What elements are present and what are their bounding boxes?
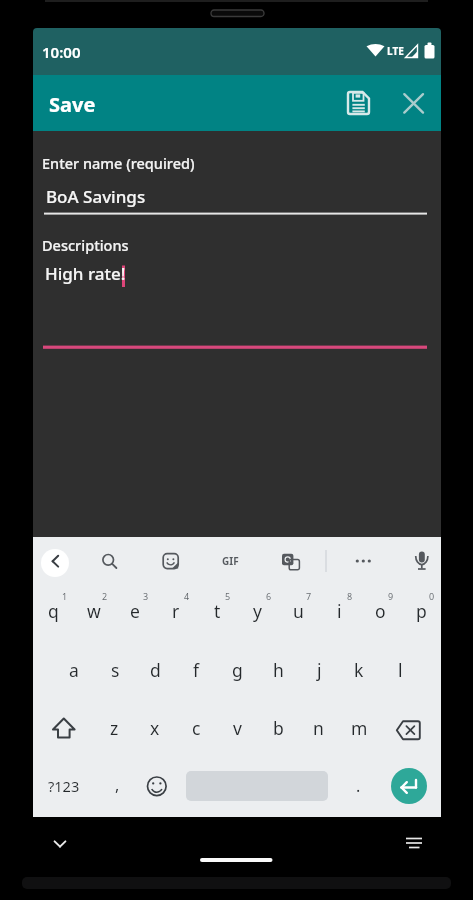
button[interactable] — [400, 710, 440, 750]
button[interactable]: x — [135, 706, 175, 750]
staticText: i — [337, 599, 342, 623]
button[interactable]: ?123 — [38, 764, 90, 808]
staticText: GIF — [222, 554, 239, 568]
staticText: v — [233, 716, 242, 740]
staticText: d — [150, 658, 161, 682]
staticText: 0 — [429, 590, 435, 602]
staticText: k — [354, 658, 364, 682]
button[interactable]: u — [278, 589, 318, 633]
staticText: u — [293, 599, 304, 623]
button[interactable]: f — [176, 648, 216, 692]
button[interactable]: , — [97, 763, 137, 807]
button[interactable]: r — [156, 589, 196, 633]
button[interactable]: n — [298, 706, 338, 750]
button[interactable] — [44, 828, 76, 860]
staticText: 3 — [143, 590, 149, 602]
staticText: y — [253, 599, 262, 623]
button[interactable]: p — [401, 589, 441, 633]
button[interactable] — [95, 549, 123, 577]
staticText: x — [150, 716, 160, 740]
staticText: Save — [49, 91, 96, 118]
button[interactable] — [149, 765, 189, 805]
button[interactable]: e — [115, 589, 155, 633]
button[interactable] — [41, 549, 69, 577]
staticText: j — [317, 658, 322, 682]
staticText: 10:00 — [42, 42, 81, 62]
button[interactable]: . — [338, 764, 378, 808]
staticText: 5 — [225, 590, 231, 602]
staticText: w — [87, 599, 101, 623]
button[interactable]: o — [360, 589, 400, 633]
staticText: Enter name (required) — [42, 153, 195, 173]
button[interactable]: GIF — [208, 541, 252, 581]
button[interactable] — [43, 710, 83, 750]
button[interactable]: t — [197, 589, 237, 633]
button[interactable]: d — [135, 648, 175, 692]
button[interactable] — [400, 90, 427, 117]
button[interactable] — [351, 549, 379, 577]
button[interactable]: k — [339, 648, 379, 692]
button[interactable]: l — [380, 648, 420, 692]
staticText: z — [110, 716, 119, 740]
button[interactable]: v — [217, 706, 257, 750]
staticText: p — [416, 599, 427, 623]
staticText: m — [351, 716, 368, 740]
staticText: Descriptions — [42, 235, 129, 255]
staticText: e — [130, 599, 140, 623]
button[interactable] — [391, 768, 427, 804]
staticText: b — [273, 716, 284, 740]
staticText: l — [398, 658, 403, 682]
button[interactable]: h — [258, 648, 298, 692]
staticText: q — [48, 599, 59, 623]
staticText: 8 — [347, 590, 353, 602]
staticText: c — [192, 716, 201, 740]
button[interactable]: j — [299, 648, 339, 692]
staticText: t — [214, 599, 221, 623]
button[interactable]: z — [94, 706, 134, 750]
button[interactable] — [398, 828, 430, 860]
button[interactable]: m — [339, 706, 379, 750]
staticText: r — [172, 599, 180, 623]
button[interactable] — [157, 549, 185, 577]
staticText: BoA Savings — [46, 185, 146, 208]
staticText: n — [313, 716, 324, 740]
staticText: s — [111, 658, 120, 682]
staticText: o — [375, 599, 386, 623]
button[interactable] — [43, 258, 427, 350]
staticText: 1 — [62, 590, 68, 602]
button[interactable]: c — [176, 706, 216, 750]
button[interactable] — [344, 89, 372, 117]
button[interactable]: a — [54, 648, 94, 692]
staticText: f — [193, 658, 200, 682]
button[interactable]: g — [217, 648, 257, 692]
button[interactable]: i — [319, 589, 359, 633]
button[interactable] — [405, 549, 433, 577]
staticText: High rate! — [45, 262, 126, 285]
staticText: a — [69, 658, 79, 682]
staticText: , — [115, 774, 120, 796]
staticText: 4 — [184, 590, 190, 602]
staticText: 7 — [306, 590, 312, 602]
staticText: 2 — [102, 590, 108, 602]
button[interactable] — [274, 549, 302, 577]
button[interactable] — [44, 180, 427, 216]
staticText: h — [273, 658, 284, 682]
staticText: g — [232, 658, 243, 682]
button[interactable]: y — [237, 589, 277, 633]
staticText: . — [356, 775, 361, 797]
button[interactable]: s — [95, 648, 135, 692]
staticText: ?123 — [48, 776, 80, 796]
staticText: 6 — [266, 590, 272, 602]
button[interactable]: b — [258, 706, 298, 750]
button[interactable]: q — [33, 589, 73, 633]
staticText: LTE — [387, 44, 404, 58]
button[interactable]: w — [74, 589, 114, 633]
staticText: 9 — [388, 590, 394, 602]
